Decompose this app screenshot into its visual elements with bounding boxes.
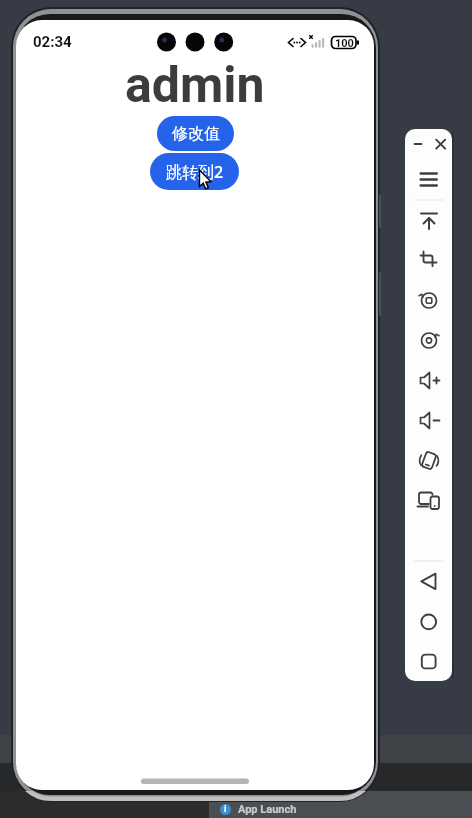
staticText: 跳转到2 <box>166 161 224 183</box>
button[interactable]: i <box>209 800 472 818</box>
button[interactable]: 跳转到2 <box>150 153 239 190</box>
button[interactable] <box>409 404 449 436</box>
button[interactable] <box>409 606 449 638</box>
button[interactable]: 修改值 <box>157 116 234 151</box>
button[interactable] <box>409 163 449 195</box>
button[interactable] <box>409 444 449 476</box>
button[interactable] <box>409 324 449 356</box>
button[interactable] <box>409 204 449 236</box>
staticText: admin <box>125 56 265 115</box>
button[interactable] <box>409 284 449 316</box>
button[interactable] <box>409 364 449 396</box>
staticText: 修改值 <box>172 124 220 144</box>
button[interactable] <box>409 484 449 516</box>
button[interactable] <box>409 565 449 597</box>
button[interactable] <box>409 646 449 678</box>
staticText: App Launch <box>238 803 297 816</box>
button[interactable] <box>409 244 449 276</box>
staticText: 100 <box>335 37 354 50</box>
staticText: 02:34 <box>33 33 72 51</box>
staticText: i <box>224 804 227 815</box>
